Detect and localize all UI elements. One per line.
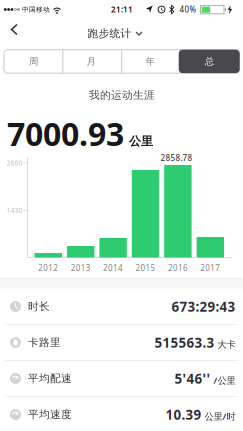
staticText: 周	[29, 56, 38, 67]
staticText: 2014	[103, 263, 123, 273]
button[interactable]: Back	[3, 19, 25, 39]
staticText: 2015	[135, 263, 155, 273]
staticText: 中国移动	[22, 5, 50, 14]
staticText: 公里/时	[204, 410, 235, 422]
staticText: 跑步统计	[87, 27, 131, 40]
staticText: 7000.93	[7, 112, 124, 155]
staticText: 673:29:43	[171, 298, 235, 315]
staticText: 515563.3	[154, 334, 214, 351]
staticText: 21:11	[111, 4, 133, 15]
staticText: 我的运动生涯	[89, 89, 155, 102]
staticText: 2012	[38, 263, 58, 273]
staticText: 平均速度	[28, 408, 72, 421]
button[interactable]: 年	[121, 50, 179, 73]
staticText: 2860	[6, 159, 22, 167]
button[interactable]: 周	[4, 50, 62, 73]
staticText: 5'46''	[174, 370, 210, 387]
staticText: 大卡	[217, 339, 235, 350]
staticText: 40%	[179, 4, 196, 15]
button[interactable]: 月	[62, 50, 120, 73]
staticText: 公里	[129, 134, 153, 149]
staticText: /公里	[213, 374, 235, 386]
staticText: 平均配速	[28, 372, 72, 385]
staticText: 卡路里	[28, 336, 61, 349]
staticText: 2017	[200, 263, 220, 273]
staticText: 1430	[6, 206, 22, 215]
button[interactable]: 总	[179, 50, 240, 73]
staticText: 总	[205, 56, 214, 67]
staticText: 时长	[28, 300, 50, 313]
button[interactable]: 跑步统计	[87, 27, 142, 40]
staticText: 年	[145, 56, 154, 67]
staticText: 2013	[71, 263, 91, 273]
staticText: 2016	[168, 263, 188, 273]
staticText: 2858.78	[160, 153, 192, 163]
staticText: 月	[86, 56, 95, 67]
staticText: 10.39	[165, 406, 201, 423]
